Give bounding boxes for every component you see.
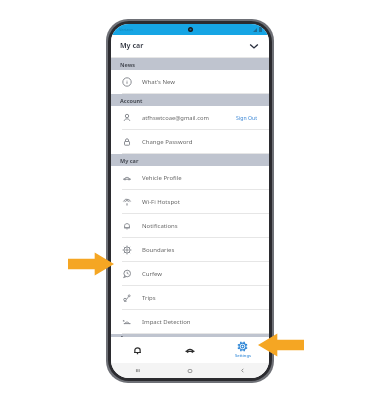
staticText: Notifications: [142, 222, 178, 230]
button[interactable]: Boundaries: [111, 238, 269, 261]
staticText: Impact Detection: [142, 318, 191, 326]
button[interactable]: Change Password: [111, 130, 269, 153]
button[interactable]: atfhswtcoae@gmail.com: [111, 106, 269, 129]
staticText: App: [120, 334, 131, 337]
staticText: atfhswtcoae@gmail.com: [142, 114, 209, 122]
staticText: Settings: [235, 353, 251, 359]
button[interactable]: Settings: [216, 337, 269, 363]
staticText: What's New: [142, 78, 176, 86]
staticText: My car: [120, 41, 144, 51]
staticText: Change Password: [142, 138, 193, 146]
button[interactable]: Vehicle Profile: [111, 166, 269, 189]
button[interactable]: Impact Detection: [111, 310, 269, 333]
staticText: Account: [120, 97, 143, 104]
button[interactable]: My car: [111, 35, 269, 57]
staticText: Trips: [142, 294, 156, 302]
button[interactable]: Notifications: [111, 337, 163, 363]
staticText: Sign Out: [236, 114, 258, 121]
staticText: Curfew: [142, 270, 163, 278]
staticText: Wi-Fi Hotspot: [142, 198, 180, 206]
button[interactable]: Sign Out: [234, 112, 260, 123]
staticText: Vehicle Profile: [142, 174, 182, 182]
staticText: My car: [120, 157, 139, 164]
button[interactable]: Recents: [111, 363, 163, 378]
button[interactable]: My car: [163, 337, 216, 363]
staticText: Verizon: [119, 27, 134, 32]
other: Expand: [248, 40, 260, 52]
button[interactable]: Trips: [111, 286, 269, 309]
staticText: News: [120, 61, 136, 68]
button[interactable]: What's New: [111, 70, 269, 93]
button[interactable]: Wi-Fi Hotspot: [111, 190, 269, 213]
button[interactable]: Notifications: [111, 214, 269, 237]
button[interactable]: Curfew: [111, 262, 269, 285]
button[interactable]: Back: [216, 363, 269, 378]
button[interactable]: Home: [163, 363, 216, 378]
staticText: Boundaries: [142, 246, 175, 254]
